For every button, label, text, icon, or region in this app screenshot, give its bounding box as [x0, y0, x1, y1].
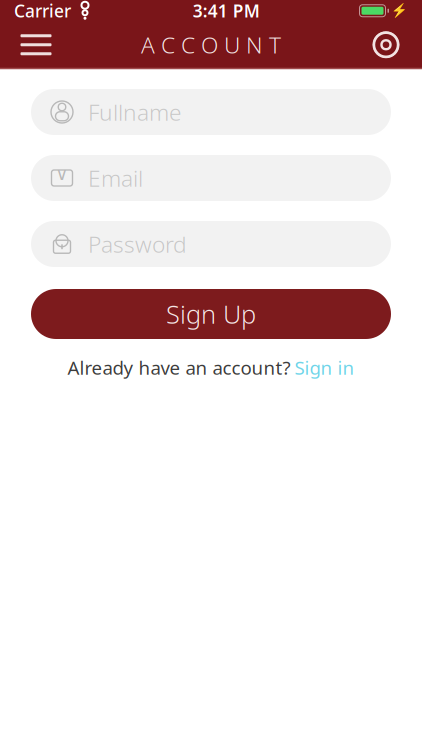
button[interactable]: Menu: [10, 23, 62, 67]
button[interactable]: Fullname: [31, 89, 391, 135]
staticText: Fullname: [88, 97, 182, 127]
button[interactable]: Password: [31, 221, 391, 267]
button[interactable]: Settings: [360, 23, 412, 67]
staticText: Already have an account?: [67, 355, 290, 380]
staticText: ⚡: [391, 3, 408, 18]
staticText: 3:41 PM: [193, 0, 260, 22]
staticText: Sign Up: [166, 297, 256, 331]
button[interactable]: Sign Up: [31, 289, 391, 339]
staticText: Email: [88, 163, 143, 193]
button[interactable]: ∨: [31, 155, 391, 201]
staticText: Sign in: [294, 355, 354, 380]
staticText: Carrier: [14, 0, 71, 22]
staticText: A C C O U N T: [141, 30, 281, 60]
staticText: ∨: [55, 164, 68, 184]
staticText: Password: [88, 229, 187, 259]
button[interactable]: Sign in: [294, 355, 354, 380]
